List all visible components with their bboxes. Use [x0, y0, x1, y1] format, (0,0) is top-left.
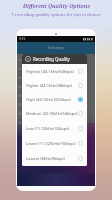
button[interactable]: Highest (44.1kHz/64kbps)	[22, 64, 87, 78]
staticText: Se	[18, 58, 22, 62]
staticText: >	[92, 84, 94, 89]
staticText: Recording Quality	[33, 56, 70, 62]
button[interactable]: Lower (11.025kHz/16kbps)	[22, 136, 87, 151]
staticText: Lower (11.025kHz/16kbps)	[26, 141, 78, 146]
staticText: Highest (44.1kHz/64kbps)	[26, 69, 78, 74]
staticText: Se	[18, 121, 22, 125]
staticText: 7 recording quality options for you to c…	[11, 12, 101, 18]
button[interactable]: Medium (22.05kHz/64kbps)	[22, 106, 87, 121]
staticText: >	[92, 75, 94, 80]
staticText: Se	[18, 76, 22, 80]
staticText: High (44.1kHz/320kbps)	[26, 97, 78, 102]
staticText: Medium (22.05kHz/64kbps)	[26, 111, 78, 116]
staticText: 9:15	[19, 37, 26, 41]
button[interactable]: Low (11.02kHz/32kbps)	[22, 121, 87, 136]
staticText: >	[92, 66, 94, 71]
staticText: >	[92, 93, 94, 98]
staticText: Se	[18, 85, 22, 89]
staticText: >	[92, 102, 94, 107]
staticText: >	[92, 111, 94, 116]
staticText: Different Quality Options	[23, 2, 90, 9]
staticText: Se	[18, 112, 22, 116]
button[interactable]: High (44.1kHz/320kbps)	[22, 92, 87, 106]
staticText: Lowest (8kHz/8kbps)	[26, 156, 78, 161]
staticText: ▮▮ ▮▮ ▮	[83, 37, 93, 41]
staticText: >	[92, 57, 94, 62]
staticText: Se	[18, 67, 22, 71]
staticText: Se	[18, 103, 22, 107]
staticText: >	[92, 120, 94, 125]
staticText: Low (11.02kHz/32kbps)	[26, 126, 78, 131]
button[interactable]: Higher (44.1kHz/48kbps)	[22, 78, 87, 92]
staticText: Higher (44.1kHz/48kbps)	[26, 83, 78, 88]
staticText: Se	[18, 94, 22, 98]
staticText: Settings	[48, 45, 64, 51]
button[interactable]: Lowest (8kHz/8kbps)	[22, 151, 87, 166]
